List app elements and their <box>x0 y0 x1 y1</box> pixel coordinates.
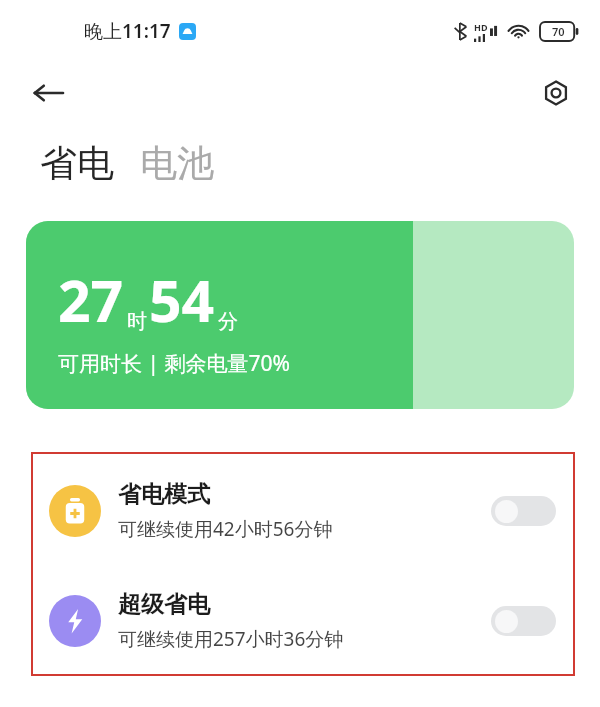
staticText: 分 <box>218 309 238 334</box>
staticText: HD <box>474 21 488 33</box>
staticText: 可用时长 | 剩余电量70% <box>58 349 290 378</box>
button[interactable]: 超级省电 <box>31 566 575 676</box>
button[interactable]: 省电模式 <box>31 456 575 566</box>
button[interactable]: Toggle 超级省电 <box>491 606 556 636</box>
button[interactable]: Settings <box>532 69 580 117</box>
staticText: 晚上11:17 <box>84 18 171 44</box>
button[interactable]: 省电 <box>40 140 114 187</box>
staticText: 可继续使用42小时56分钟 <box>118 516 333 542</box>
button[interactable]: 27 <box>26 221 574 409</box>
staticText: 70 <box>552 24 565 39</box>
button[interactable]: Toggle 省电模式 <box>491 496 556 526</box>
button[interactable]: 电池 <box>140 140 214 187</box>
staticText: 时 <box>127 309 147 334</box>
staticText: 省电模式 <box>118 480 210 509</box>
staticText: 27 <box>58 261 124 339</box>
staticText: 可继续使用257小时36分钟 <box>118 626 344 652</box>
staticText: 超级省电 <box>118 590 210 619</box>
button[interactable]: Back <box>24 69 72 117</box>
staticText: 54 <box>149 261 215 339</box>
